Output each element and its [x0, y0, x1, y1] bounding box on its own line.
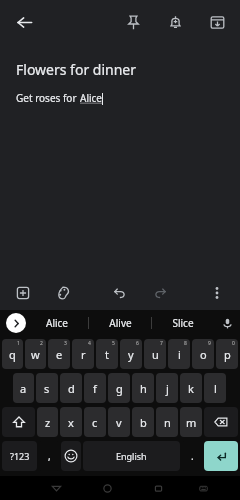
staticText: 1 — [17, 340, 20, 347]
staticText: i — [178, 347, 181, 362]
button[interactable]: Reminder — [160, 7, 190, 37]
staticText: t — [105, 347, 109, 362]
button[interactable]: b — [132, 407, 154, 437]
staticText: z — [45, 415, 51, 430]
button[interactable]: Flowers for dinner — [16, 60, 137, 79]
button[interactable]: q — [2, 339, 23, 369]
button[interactable]: n — [156, 407, 178, 437]
button[interactable]: t — [96, 339, 118, 369]
staticText: a — [20, 381, 27, 396]
staticText: Get roses for — [16, 91, 80, 105]
button[interactable]: Shift — [2, 407, 35, 437]
button[interactable]: Redo — [148, 280, 174, 306]
staticText: 7 — [160, 340, 163, 347]
button[interactable]: Alive — [89, 310, 151, 336]
button[interactable]: Expand suggestions — [6, 313, 26, 333]
staticText: r — [81, 347, 86, 362]
staticText: 6 — [136, 340, 139, 347]
button[interactable]: , — [39, 441, 59, 471]
staticText: 8 — [184, 340, 187, 347]
staticText: , — [48, 449, 51, 463]
staticText: y — [128, 347, 134, 362]
staticText: k — [188, 381, 194, 396]
button[interactable]: c — [84, 407, 106, 437]
staticText: j — [166, 381, 169, 396]
button[interactable]: Color palette — [50, 280, 76, 306]
button[interactable]: Slice — [152, 310, 214, 336]
button[interactable]: Recents — [147, 477, 169, 499]
staticText: f — [93, 381, 97, 396]
staticText: Slice — [172, 316, 194, 330]
staticText: c — [92, 415, 98, 430]
staticText: ?123 — [10, 450, 30, 462]
staticText: v — [116, 415, 122, 430]
button[interactable]: ?123 — [2, 441, 37, 471]
staticText: e — [56, 347, 63, 362]
button[interactable]: s — [36, 373, 58, 403]
staticText: 3 — [64, 340, 67, 347]
button[interactable]: . — [182, 441, 202, 471]
button[interactable]: k — [180, 373, 202, 403]
staticText: English — [116, 450, 147, 462]
button[interactable]: English — [83, 441, 180, 471]
button[interactable]: Back — [45, 477, 67, 499]
button[interactable]: v — [108, 407, 130, 437]
staticText: g — [116, 381, 123, 396]
staticText: h — [140, 381, 147, 396]
staticText: m — [186, 415, 197, 430]
button[interactable]: p — [216, 339, 238, 369]
staticText: . — [191, 449, 194, 463]
button[interactable]: Voice input — [214, 310, 240, 336]
button[interactable]: More options — [204, 280, 230, 306]
button[interactable]: z — [37, 407, 58, 437]
button[interactable]: l — [204, 373, 226, 403]
button[interactable]: g — [108, 373, 130, 403]
button[interactable]: y — [120, 339, 142, 369]
button[interactable]: o — [192, 339, 214, 369]
button[interactable]: e — [48, 339, 70, 369]
staticText: o — [200, 347, 207, 362]
button[interactable]: f — [84, 373, 106, 403]
staticText: l — [214, 381, 217, 396]
button[interactable]: h — [132, 373, 154, 403]
button[interactable]: w — [25, 339, 46, 369]
staticText: w — [31, 347, 40, 362]
staticText: Alice — [46, 316, 68, 330]
button[interactable]: r — [72, 339, 94, 369]
staticText: 4 — [88, 340, 91, 347]
button[interactable]: d — [60, 373, 82, 403]
staticText: b — [140, 415, 147, 430]
button[interactable]: Backspace — [204, 407, 238, 437]
staticText: 9 — [208, 340, 211, 347]
staticText: Alice — [80, 91, 102, 105]
staticText: u — [152, 347, 159, 362]
button[interactable]: Get roses for — [16, 91, 103, 105]
button[interactable]: Undo — [106, 280, 132, 306]
staticText: 2 — [40, 340, 43, 347]
staticText: Alive — [109, 316, 132, 330]
button[interactable]: Pin — [118, 7, 148, 37]
button[interactable]: Switch keyboard — [192, 477, 214, 499]
button[interactable]: i — [168, 339, 190, 369]
button[interactable]: a — [13, 373, 34, 403]
staticText: n — [164, 415, 171, 430]
button[interactable]: Enter — [204, 441, 238, 471]
staticText: s — [44, 381, 50, 396]
button[interactable]: Back — [8, 6, 40, 38]
button[interactable]: u — [144, 339, 166, 369]
staticText: p — [224, 347, 231, 362]
button[interactable]: Emoji — [61, 441, 81, 471]
button[interactable]: Add — [10, 280, 36, 306]
button[interactable]: x — [60, 407, 82, 437]
button[interactable]: j — [156, 373, 178, 403]
staticText: x — [68, 415, 74, 430]
staticText: 0 — [232, 340, 235, 347]
button[interactable]: Home — [96, 477, 118, 499]
staticText: q — [9, 347, 16, 362]
button[interactable]: m — [180, 407, 202, 437]
button[interactable]: Archive — [202, 7, 232, 37]
button[interactable]: Alice — [26, 310, 88, 336]
staticText: 5 — [112, 340, 115, 347]
staticText: d — [68, 381, 75, 396]
